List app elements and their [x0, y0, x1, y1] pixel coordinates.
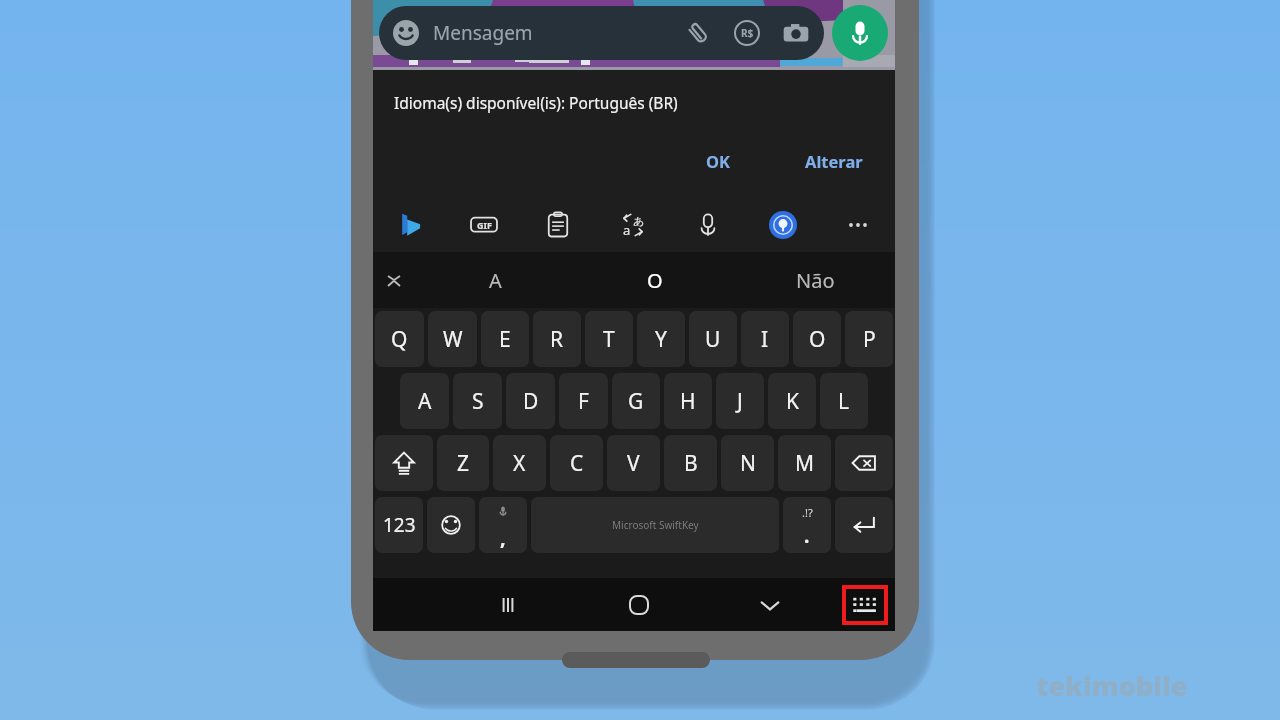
staticText: GIF — [477, 219, 492, 231]
button[interactable]: OK — [696, 146, 741, 176]
button[interactable]: Pagamento — [734, 20, 760, 46]
button[interactable]: Fechar teclado — [704, 578, 835, 631]
button[interactable]: Câmera — [782, 19, 810, 47]
button[interactable]: Microsoft SwiftKey — [531, 497, 779, 553]
button[interactable]: F — [559, 373, 608, 429]
staticText: P — [863, 325, 876, 354]
staticText: OK — [706, 150, 731, 172]
staticText: S — [472, 387, 484, 416]
staticText: Microsoft SwiftKey — [612, 518, 699, 532]
staticText: V — [627, 449, 640, 478]
button[interactable]: X — [493, 435, 546, 491]
staticText: W — [443, 325, 463, 354]
staticText: tekimobile — [1036, 667, 1188, 704]
staticText: G — [628, 387, 644, 416]
staticText: N — [740, 449, 756, 478]
staticText: K — [786, 387, 799, 416]
staticText: L — [838, 387, 850, 416]
staticText: あ — [633, 214, 645, 228]
button[interactable]: C — [550, 435, 603, 491]
staticText: , — [500, 524, 506, 551]
staticText: X — [513, 449, 526, 478]
button[interactable]: Pontuação — [783, 497, 831, 553]
staticText: O — [647, 267, 663, 294]
staticText: C — [570, 449, 584, 478]
button[interactable]: O — [575, 252, 735, 308]
button[interactable]: Gravar áudio — [832, 5, 888, 61]
button[interactable]: Voz — [670, 198, 745, 252]
staticText: O — [809, 325, 826, 354]
button[interactable]: B — [664, 435, 717, 491]
button[interactable]: Área de transferência — [521, 198, 595, 252]
button[interactable]: J — [716, 373, 764, 429]
button[interactable]: Dicas — [745, 198, 820, 252]
staticText: D — [523, 387, 539, 416]
button[interactable]: O — [793, 311, 841, 367]
button[interactable]: Recentes — [443, 578, 573, 631]
staticText: A — [489, 267, 502, 294]
button[interactable]: Mais — [820, 198, 895, 252]
button[interactable]: N — [721, 435, 774, 491]
button[interactable]: Emoji — [393, 20, 419, 46]
button[interactable]: GIF — [447, 198, 521, 252]
button[interactable]: Y — [637, 311, 685, 367]
button[interactable]: Início — [573, 578, 704, 631]
button[interactable]: Emoji — [427, 497, 475, 553]
button[interactable]: A — [400, 373, 449, 429]
button[interactable]: Anexar — [684, 19, 712, 47]
button[interactable]: Q — [375, 311, 424, 367]
staticText: R — [550, 325, 564, 354]
staticText: A — [418, 387, 432, 416]
staticText: Não — [796, 267, 835, 294]
button[interactable]: M — [778, 435, 831, 491]
staticText: B — [684, 449, 698, 478]
staticText: H — [680, 387, 696, 416]
button[interactable]: Vírgula — [479, 497, 527, 553]
button[interactable]: Expandir — [373, 252, 415, 308]
button[interactable]: Tradutor — [595, 198, 670, 252]
button[interactable]: V — [607, 435, 660, 491]
staticText: Mensagem — [433, 20, 533, 46]
staticText: a — [623, 221, 631, 239]
button[interactable]: Enter — [835, 497, 893, 553]
button[interactable]: Bing — [373, 198, 447, 252]
button[interactable]: S — [453, 373, 502, 429]
staticText: . — [804, 523, 810, 549]
button[interactable]: 123 — [375, 497, 423, 553]
button[interactable]: Apagar — [835, 435, 893, 491]
staticText: Z — [457, 449, 470, 478]
button[interactable]: W — [428, 311, 477, 367]
staticText: I — [761, 325, 769, 354]
staticText: Q — [391, 325, 408, 354]
button[interactable]: P — [845, 311, 893, 367]
staticText: F — [578, 387, 589, 416]
staticText: R$ — [741, 26, 754, 40]
staticText: U — [705, 325, 721, 354]
button[interactable]: G — [612, 373, 660, 429]
button[interactable]: A — [415, 252, 575, 308]
staticText: J — [737, 387, 743, 416]
button[interactable]: Alterar — [795, 146, 873, 176]
button[interactable]: Emoji — [379, 6, 824, 60]
staticText: T — [603, 325, 615, 354]
button[interactable]: I — [741, 311, 789, 367]
button[interactable]: Shift — [375, 435, 433, 491]
staticText: Y — [655, 325, 667, 354]
staticText: E — [499, 325, 511, 354]
staticText: M — [795, 449, 815, 478]
button[interactable]: Alternar teclado — [835, 578, 895, 631]
button[interactable]: Z — [437, 435, 489, 491]
button[interactable]: E — [481, 311, 529, 367]
button[interactable]: H — [664, 373, 712, 429]
staticText: 123 — [383, 512, 416, 538]
button[interactable]: D — [506, 373, 555, 429]
button[interactable]: Não — [735, 252, 895, 308]
button[interactable]: U — [689, 311, 737, 367]
button[interactable]: R — [533, 311, 581, 367]
button[interactable]: L — [820, 373, 868, 429]
button[interactable]: K — [768, 373, 816, 429]
staticText: Idioma(s) disponível(is): Português (BR) — [394, 92, 678, 113]
button[interactable]: T — [585, 311, 633, 367]
staticText: .!? — [802, 505, 813, 520]
staticText: Alterar — [805, 150, 863, 172]
